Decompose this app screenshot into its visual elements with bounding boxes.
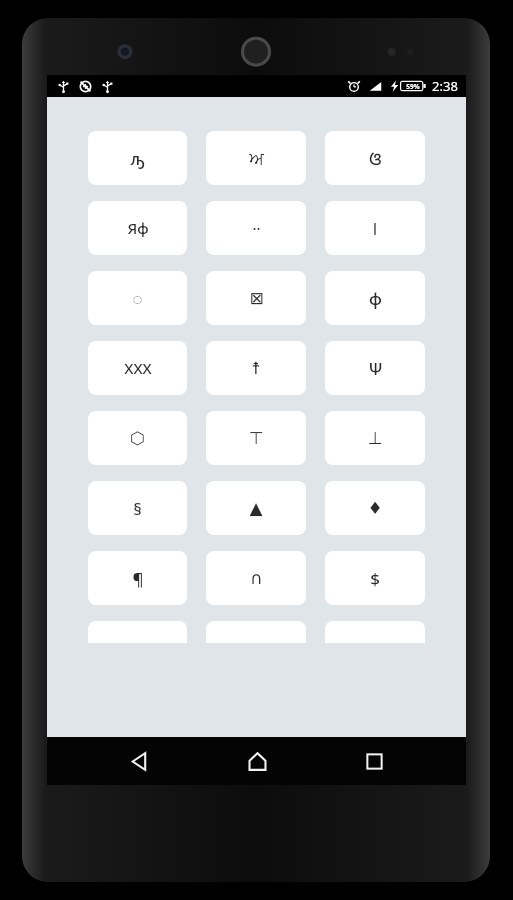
staticText: ਅ (249, 150, 264, 167)
staticText: ⊤ (249, 428, 264, 448)
button[interactable]: ⬡ (88, 411, 187, 465)
staticText: ф (369, 287, 382, 310)
button[interactable]: Back (113, 737, 165, 785)
staticText: ⬡ (130, 428, 145, 448)
button[interactable]: Ψ (325, 341, 425, 395)
button[interactable]: ◌ (88, 271, 187, 325)
button[interactable]: ·· (206, 201, 306, 255)
button[interactable]: ǀ (325, 201, 425, 255)
button[interactable] (88, 621, 187, 643)
button[interactable]: XXX (88, 341, 187, 395)
button[interactable]: Recent apps (348, 737, 400, 785)
staticText: $ (370, 567, 380, 590)
button[interactable]: ⊥ (325, 411, 425, 465)
button[interactable]: ф (325, 271, 425, 325)
button[interactable]: ⊤ (206, 411, 306, 465)
button[interactable]: ԡ (88, 131, 187, 185)
button[interactable]: ଓ (325, 131, 425, 185)
staticText: ·· (252, 218, 261, 238)
staticText: ⊥ (368, 428, 383, 448)
button[interactable]: Home (231, 737, 283, 785)
button[interactable]: ♦ (325, 481, 425, 535)
button[interactable]: ☨ (206, 341, 306, 395)
staticText: 59% (406, 82, 420, 91)
staticText: ☨ (251, 358, 261, 378)
staticText: ԡ (130, 147, 145, 170)
staticText: ♦ (367, 498, 383, 518)
staticText: Яф (127, 218, 149, 238)
staticText: ◌ (132, 287, 143, 310)
staticText: ▲ (249, 498, 263, 518)
staticText: ǀ (372, 217, 378, 240)
button[interactable]: ⊠ (206, 271, 306, 325)
staticText: ଓ (369, 147, 382, 170)
button[interactable] (206, 621, 306, 643)
button[interactable]: ∩ (206, 551, 306, 605)
staticText: ¶ (132, 567, 144, 590)
button[interactable]: Яф (88, 201, 187, 255)
staticText: XXX (124, 358, 152, 378)
button[interactable]: ▲ (206, 481, 306, 535)
staticText: Ψ (368, 357, 383, 380)
staticText: ⊠ (249, 288, 264, 308)
button[interactable]: $ (325, 551, 425, 605)
button[interactable]: ਅ (206, 131, 306, 185)
button[interactable]: § (88, 481, 187, 535)
staticText: § (133, 497, 142, 520)
staticText: 2:38 (432, 77, 458, 95)
button[interactable]: ¶ (88, 551, 187, 605)
staticText: ∩ (250, 568, 263, 588)
button[interactable] (325, 621, 425, 643)
